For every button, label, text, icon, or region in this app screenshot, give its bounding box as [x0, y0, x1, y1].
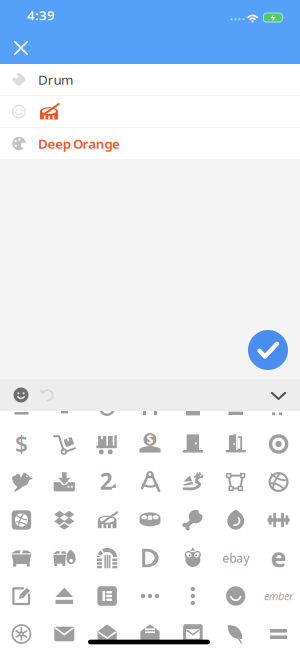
staticText: e	[271, 539, 287, 575]
button[interactable]: dyalog	[129, 539, 171, 577]
button[interactable]: envelope-open-text	[129, 615, 171, 649]
button[interactable]: dragon	[171, 463, 214, 501]
button[interactable]: draft2digital	[86, 463, 129, 501]
button[interactable]: Undo	[34, 382, 60, 408]
button[interactable]: dove	[0, 463, 43, 501]
button[interactable]: earlybirds	[171, 539, 214, 577]
button[interactable]: drum	[86, 501, 129, 539]
staticText: $	[15, 429, 28, 459]
button[interactable]: drumstick-bite	[171, 501, 214, 539]
button[interactable]: dribbble	[257, 463, 300, 501]
button[interactable]: envelope	[43, 615, 86, 649]
button[interactable]: dumpster-fire	[43, 539, 86, 577]
button[interactable]: dumpster	[0, 539, 43, 577]
button[interactable]: dropbox	[43, 501, 86, 539]
button[interactable]: ellipsis-v	[171, 577, 214, 615]
staticText: ebay	[222, 550, 249, 566]
button[interactable]: ebay	[214, 539, 257, 577]
button[interactable]: dollar	[0, 425, 43, 463]
button[interactable]: dumbbell	[257, 501, 300, 539]
staticText: 4:39	[27, 6, 55, 24]
button[interactable]: drafting-compass	[129, 463, 171, 501]
button[interactable]: dot-circle	[257, 425, 300, 463]
staticText: Drum	[38, 71, 73, 88]
button[interactable]: Close	[9, 36, 32, 59]
button[interactable]: dribbble-square	[0, 501, 43, 539]
button[interactable]: Hide keyboard	[264, 383, 292, 409]
staticText: 2	[100, 466, 113, 496]
button[interactable]: drupal	[214, 501, 257, 539]
button[interactable]: ember	[257, 577, 300, 615]
button[interactable]: door-closed	[171, 425, 214, 463]
staticText: Deep Orange	[38, 135, 120, 152]
button[interactable]: download	[43, 463, 86, 501]
button[interactable]: draw-polygon	[214, 463, 257, 501]
button[interactable]: donate	[129, 425, 171, 463]
button[interactable]: drum-steelpan	[129, 501, 171, 539]
button[interactable]: ellipsis-h	[129, 577, 171, 615]
button[interactable]: equals	[257, 615, 300, 649]
button[interactable]: envelope-open	[86, 615, 129, 649]
button[interactable]: Name	[0, 64, 300, 95]
button[interactable]: Emoji icons	[8, 382, 34, 408]
button[interactable]: Save	[248, 330, 288, 370]
staticText: $	[146, 431, 153, 447]
staticText: ember	[264, 589, 293, 603]
button[interactable]: elementor	[86, 577, 129, 615]
button[interactable]: edge	[257, 539, 300, 577]
button[interactable]: envira	[214, 615, 257, 649]
button[interactable]: dolly-flatbed	[86, 425, 129, 463]
button[interactable]: ello	[214, 577, 257, 615]
button[interactable]: Icon	[0, 96, 300, 127]
button[interactable]: Color	[0, 128, 300, 159]
button[interactable]: empire	[0, 615, 43, 649]
button[interactable]: dungeon	[86, 539, 129, 577]
button[interactable]: dolly	[43, 425, 86, 463]
button[interactable]: envelope-square	[171, 615, 214, 649]
button[interactable]: eject	[43, 577, 86, 615]
button[interactable]: edit	[0, 577, 43, 615]
button[interactable]: door-open	[214, 425, 257, 463]
